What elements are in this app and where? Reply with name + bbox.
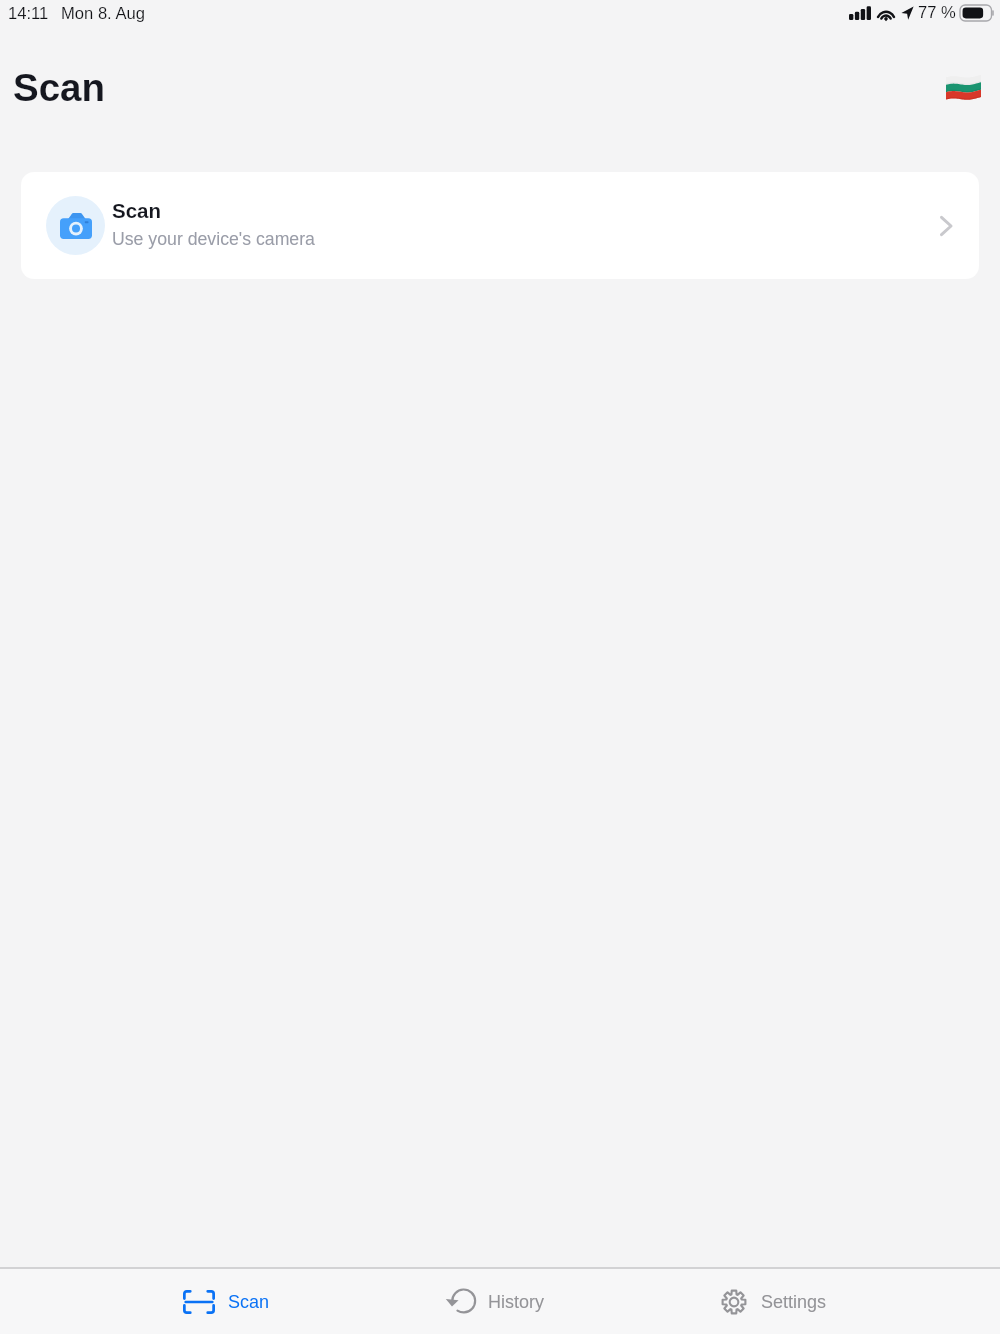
staticText: Scan [13,66,106,109]
button[interactable]: Scan [179,1269,274,1334]
staticText: 14:11 [8,4,49,23]
staticText: 77 % [918,3,956,22]
button[interactable]: Settings [716,1269,831,1334]
staticText: Scan [228,1292,270,1312]
staticText: History [488,1292,545,1312]
button[interactable]: Scan [21,172,979,279]
button[interactable]: Language [943,70,984,106]
staticText: Settings [761,1292,827,1312]
button[interactable]: History [442,1269,549,1334]
staticText: Scan [112,199,161,222]
staticText: Use your device's camera [112,229,315,249]
staticText: Mon 8. Aug [61,4,145,23]
